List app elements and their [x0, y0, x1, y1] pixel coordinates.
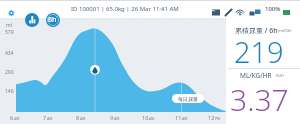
- staticText: AM: [114, 116, 120, 121]
- staticText: 累積尿量 / 6h: [235, 26, 278, 36]
- staticText: 12: [208, 114, 215, 121]
- staticText: 6: [10, 114, 14, 121]
- staticText: ID 100001 | 65.0kg | 26 Mar 11:41 AM: [71, 5, 179, 13]
- staticText: 146: [5, 88, 14, 95]
- staticText: AM: [47, 116, 53, 121]
- button[interactable]: 6 hour range: [46, 13, 60, 27]
- staticText: 434: [5, 50, 14, 57]
- staticText: 10: [142, 114, 149, 121]
- staticText: ml: [6, 22, 12, 29]
- staticText: 11: [175, 114, 182, 121]
- staticText: PM: [215, 116, 221, 121]
- staticText: 6h: [48, 15, 57, 25]
- staticText: AM: [14, 116, 20, 121]
- staticText: 3.37: [230, 79, 289, 120]
- staticText: 每日尿量: [178, 96, 198, 102]
- button[interactable]: Chart view: [25, 13, 39, 27]
- staticText: ML/KG/HR: [240, 71, 272, 80]
- staticText: AM: [182, 116, 188, 121]
- staticText: AM: [149, 116, 155, 121]
- button[interactable]: 每日尿量: [172, 94, 204, 103]
- staticText: 579: [5, 29, 14, 36]
- staticText: 7: [43, 114, 47, 121]
- staticText: 219: [234, 32, 284, 71]
- staticText: (6H): [276, 73, 284, 78]
- staticText: 9: [110, 114, 114, 121]
- staticText: (ml/6h): [278, 28, 292, 33]
- staticText: 8: [76, 114, 80, 121]
- staticText: AM: [80, 116, 86, 121]
- staticText: 100%: [265, 5, 281, 13]
- button[interactable]: Settings: [5, 7, 18, 20]
- staticText: 290: [5, 69, 14, 76]
